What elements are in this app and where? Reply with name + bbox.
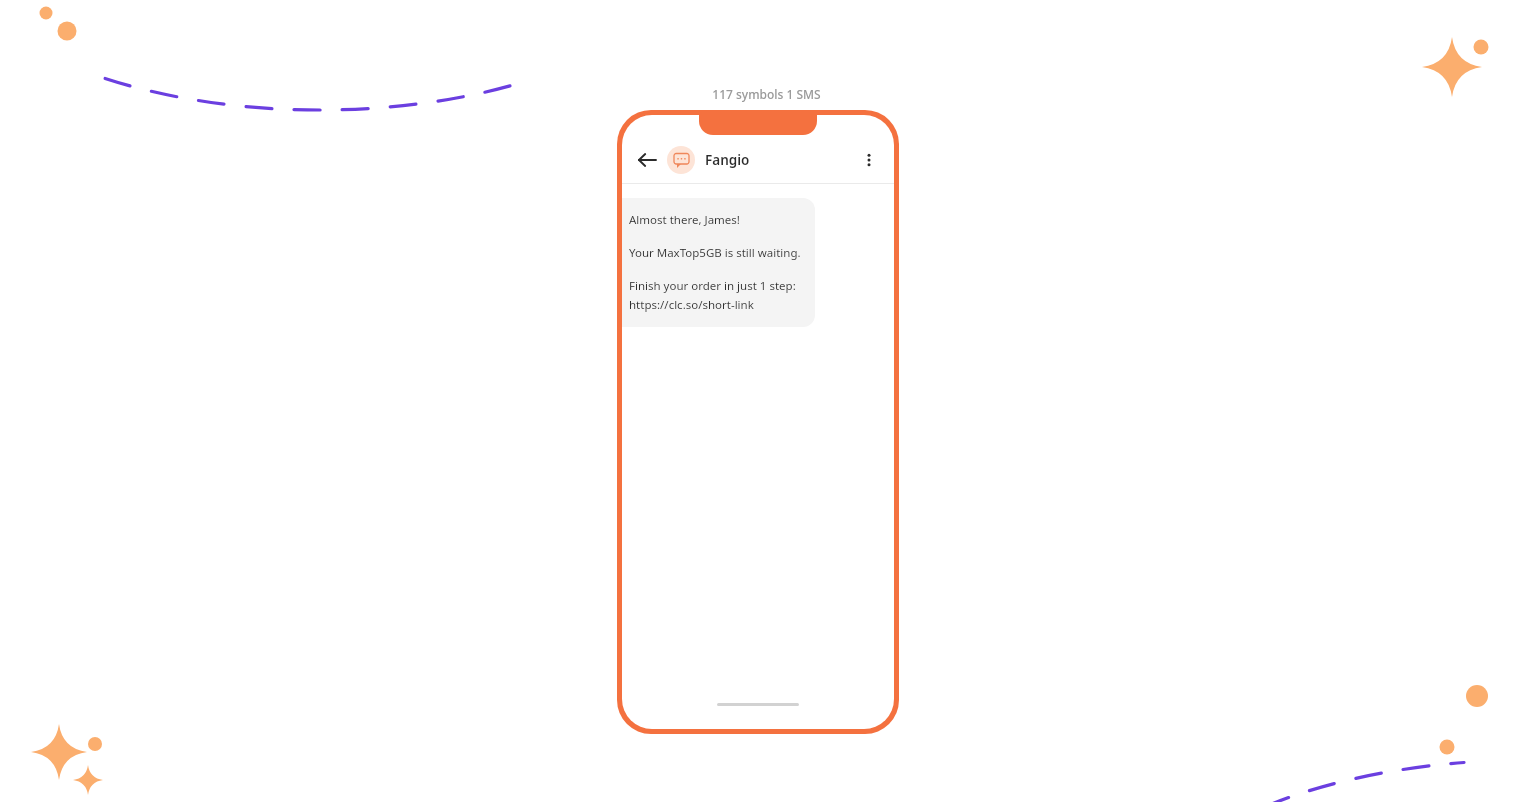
button[interactable]: Back xyxy=(634,147,660,173)
staticText: 117 symbols 1 SMS xyxy=(712,86,821,102)
staticText: Almost there, James! xyxy=(629,212,740,228)
staticText: Fangio xyxy=(705,151,750,169)
staticText: https://clc.so/short-link xyxy=(629,297,754,313)
button[interactable]: Almost there, James! xyxy=(622,198,815,327)
staticText: Finish your order in just 1 step: xyxy=(629,278,796,294)
staticText: Your MaxTop5GB is still waiting. xyxy=(629,245,801,261)
button[interactable]: More options xyxy=(856,147,882,173)
